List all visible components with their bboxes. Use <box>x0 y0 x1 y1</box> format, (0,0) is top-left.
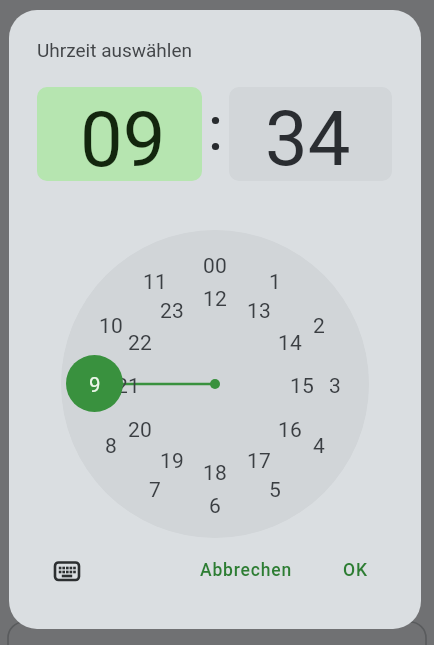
button[interactable] <box>229 87 392 181</box>
staticText: 22 <box>128 331 153 356</box>
staticText: 6 <box>209 494 222 519</box>
staticText: 11 <box>143 270 168 295</box>
staticText: 09 <box>80 95 166 184</box>
staticText: 14 <box>278 331 303 356</box>
staticText: Uhrzeit auswählen <box>37 39 193 61</box>
staticText: 16 <box>278 418 303 443</box>
button[interactable]: Abbrechen <box>181 548 311 592</box>
staticText: 15 <box>290 374 315 399</box>
staticText: OK <box>343 560 368 581</box>
staticText: 20 <box>128 418 153 443</box>
staticText: 00 <box>203 254 228 279</box>
staticText: 5 <box>269 478 282 503</box>
staticText: 12 <box>203 287 228 312</box>
staticText: 10 <box>99 314 124 339</box>
staticText: 17 <box>247 449 272 474</box>
staticText: 23 <box>160 299 185 324</box>
staticText: 21 <box>116 374 141 399</box>
staticText: 1 <box>269 270 282 295</box>
staticText: 9 <box>89 373 101 397</box>
staticText: 34 <box>265 94 351 183</box>
button[interactable] <box>49 556 85 586</box>
staticText: Abbrechen <box>200 560 292 581</box>
staticText: 19 <box>160 449 185 474</box>
staticText: 2 <box>313 314 326 339</box>
button[interactable]: 9 <box>66 355 123 412</box>
staticText: 3 <box>329 374 342 399</box>
staticText: 18 <box>203 461 228 486</box>
staticText: 7 <box>149 478 162 503</box>
button[interactable] <box>37 87 202 181</box>
staticText: 4 <box>313 434 326 459</box>
button[interactable]: OK <box>323 548 387 592</box>
staticText: 13 <box>247 299 272 324</box>
staticText: 8 <box>105 434 118 459</box>
